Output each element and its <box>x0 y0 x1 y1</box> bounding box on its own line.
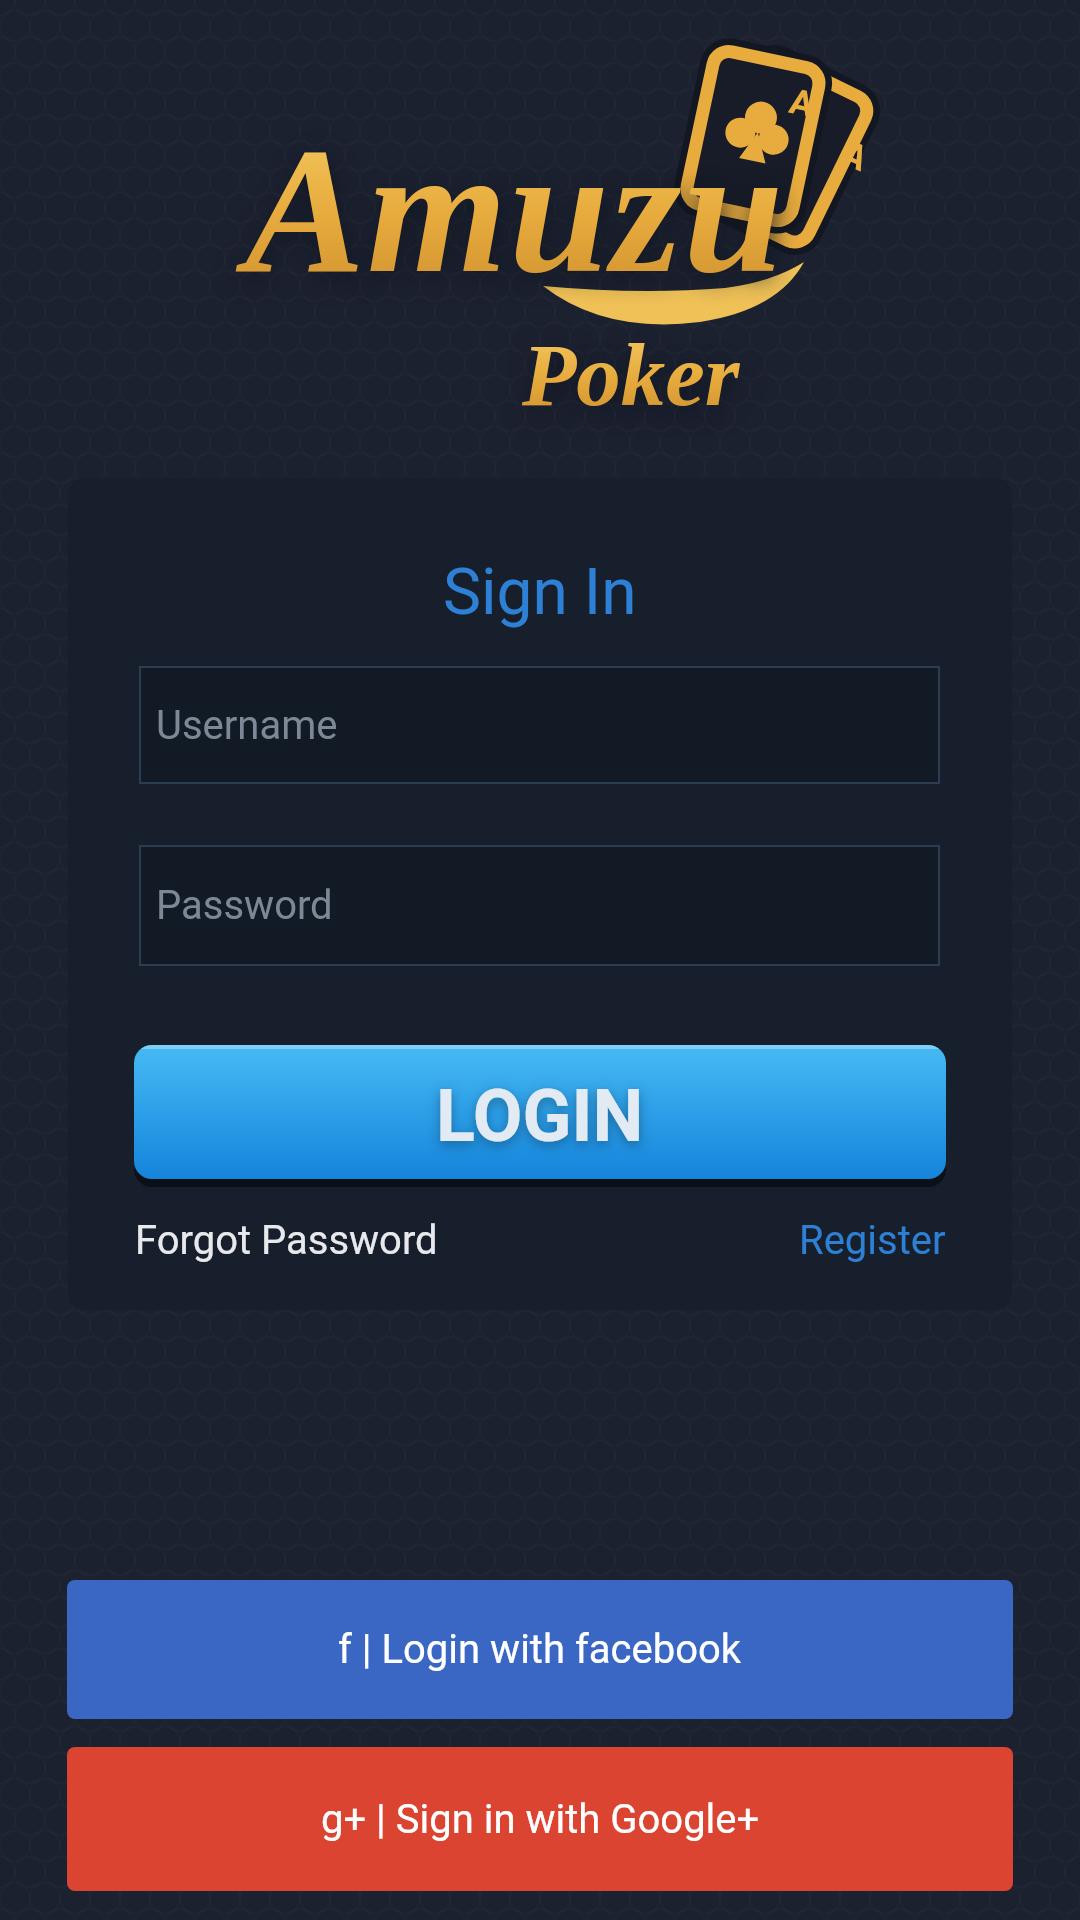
staticText: A <box>836 133 874 180</box>
button[interactable]: Forgot Password <box>135 1217 438 1264</box>
staticText: Username <box>156 702 338 749</box>
staticText: LOGIN <box>436 1074 644 1158</box>
button[interactable]: g+ | Sign in with Google+ <box>67 1747 1013 1891</box>
staticText: f | Login with facebook <box>338 1626 742 1673</box>
button[interactable]: Password <box>139 845 940 966</box>
button[interactable]: f | Login with facebook <box>67 1580 1013 1719</box>
staticText: Amuzu <box>245 111 786 310</box>
staticText: Password <box>156 882 333 929</box>
staticText: g+ | Sign in with Google+ <box>321 1796 760 1843</box>
staticText: Sign In <box>443 555 637 630</box>
staticText: A <box>786 81 818 126</box>
staticText: Poker <box>522 326 740 425</box>
button[interactable]: LOGIN <box>134 1045 946 1179</box>
button[interactable]: Register <box>799 1217 946 1264</box>
button[interactable]: Username <box>139 666 940 784</box>
